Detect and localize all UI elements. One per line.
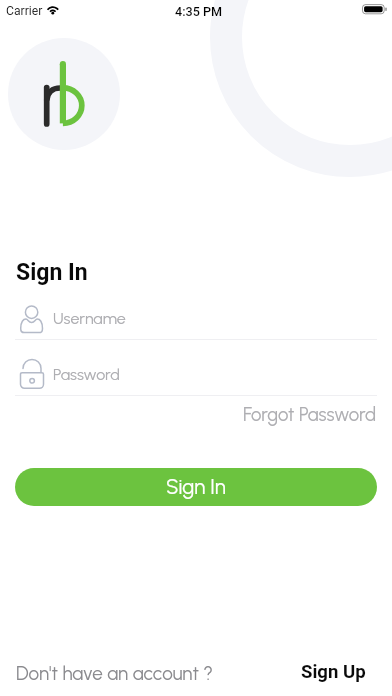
other: Username: [20, 306, 44, 333]
button[interactable]: Username: [0, 303, 392, 340]
staticText: Sign In: [16, 259, 88, 286]
staticText: Carrier: [6, 4, 43, 18]
staticText: Don't have an account ?: [16, 662, 213, 685]
staticText: Password: [53, 365, 120, 384]
button[interactable]: Sign Up: [301, 661, 366, 683]
button[interactable]: Password: [0, 358, 392, 396]
button[interactable]: Sign In: [15, 468, 377, 506]
other: Battery: [362, 4, 389, 15]
staticText: Sign In: [166, 475, 226, 500]
other: Wi-Fi: [46, 4, 61, 15]
other: Password: [20, 358, 44, 389]
staticText: 4:35 PM: [175, 4, 223, 19]
staticText: Username: [53, 309, 126, 328]
button[interactable]: Forgot Password: [243, 403, 377, 425]
